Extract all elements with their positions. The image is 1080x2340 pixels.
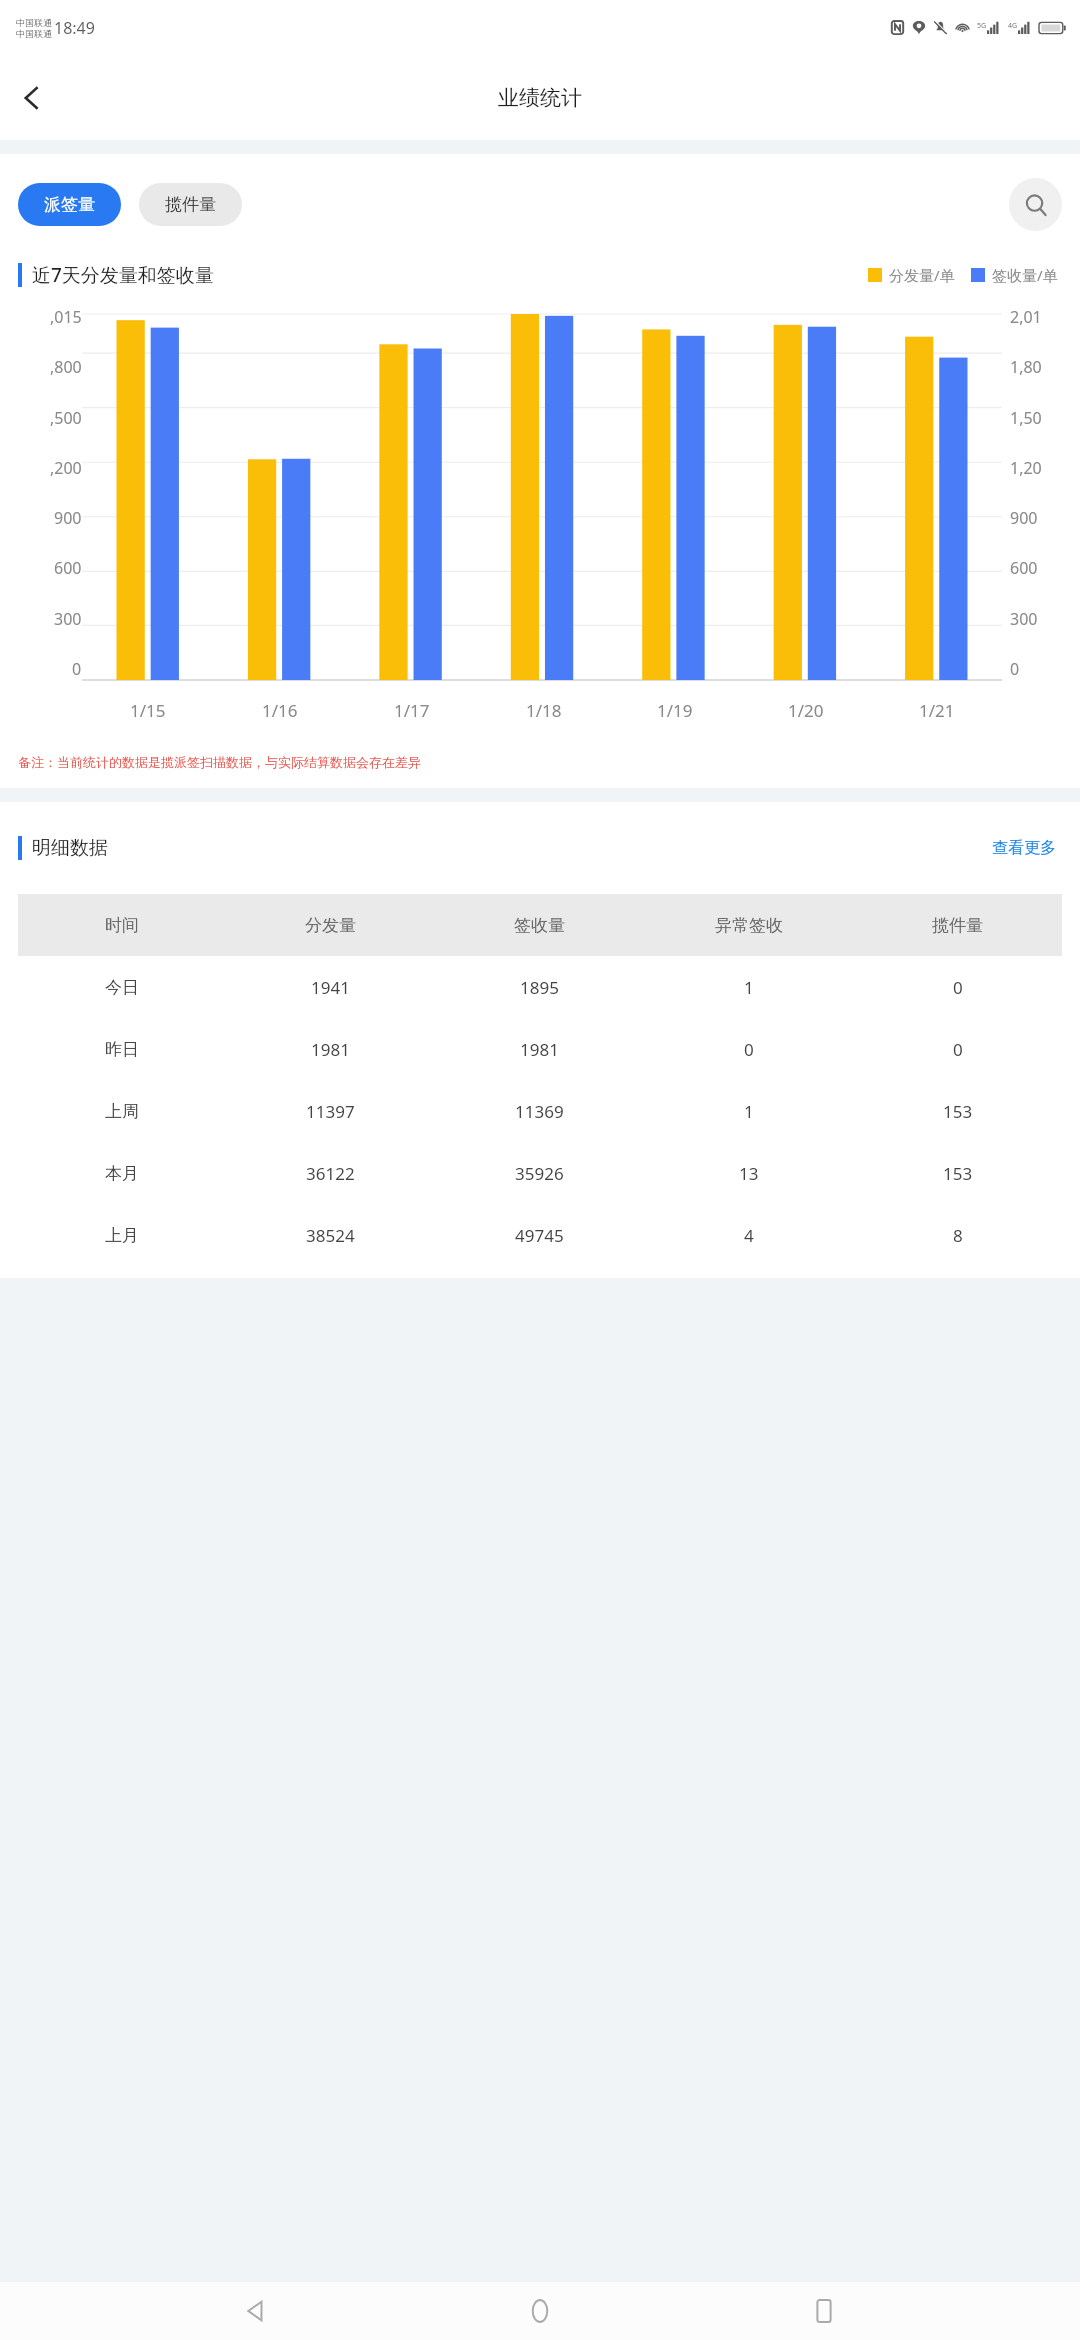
staticText: 业绩统计 — [498, 85, 582, 111]
staticText: 上月 — [105, 1225, 139, 1246]
staticText: 153 — [943, 1100, 973, 1123]
staticText: 300 — [54, 608, 82, 630]
staticText: 49745 — [515, 1224, 564, 1247]
button[interactable]: 上周 — [18, 1080, 1062, 1142]
staticText: 8 — [953, 1224, 963, 1247]
staticText: 0 — [744, 1038, 754, 1061]
staticText: 35926 — [515, 1162, 564, 1185]
staticText: 11369 — [515, 1100, 564, 1123]
staticText: 1981 — [311, 1038, 350, 1061]
staticText: 分发量/单 — [889, 265, 955, 285]
staticText: 1981 — [520, 1038, 559, 1061]
staticText: 明细数据 — [32, 836, 108, 860]
staticText: 1/18 — [526, 699, 562, 722]
staticText: 异常签收 — [715, 915, 783, 936]
staticText: 153 — [943, 1162, 973, 1185]
staticText: 中国联通 — [16, 28, 52, 39]
staticText: 揽件量 — [932, 915, 983, 936]
staticText: 36122 — [306, 1162, 355, 1185]
staticText: 2,01 — [1010, 306, 1042, 328]
button[interactable]: 本月 — [18, 1142, 1062, 1204]
staticText: 1,20 — [1010, 457, 1042, 479]
button[interactable]: 今日 — [18, 956, 1062, 1018]
staticText: 1941 — [311, 976, 350, 999]
staticText: 11397 — [306, 1100, 355, 1123]
staticText: 1/15 — [130, 699, 166, 722]
staticText: 600 — [54, 557, 82, 579]
staticText: 13 — [739, 1162, 759, 1185]
staticText: 昨日 — [105, 1039, 139, 1060]
button[interactable]: Home — [512, 2283, 568, 2339]
button[interactable]: Search — [1009, 178, 1062, 231]
button[interactable]: 揽件量 — [139, 183, 242, 226]
button[interactable]: Recent apps — [796, 2283, 852, 2339]
button[interactable]: 昨日 — [18, 1018, 1062, 1080]
staticText: 38524 — [306, 1224, 355, 1247]
staticText: 0 — [72, 658, 82, 680]
button[interactable]: 上月 — [18, 1204, 1062, 1266]
staticText: 900 — [1010, 507, 1038, 529]
staticText: 1895 — [520, 976, 559, 999]
staticText: 分发量 — [305, 915, 356, 936]
staticText: 揽件量 — [165, 194, 216, 215]
button[interactable]: 查看更多 — [986, 832, 1062, 864]
button[interactable]: Back — [0, 66, 64, 130]
staticText: 0 — [953, 976, 963, 999]
staticText: 1,50 — [1010, 407, 1042, 429]
staticText: 1/20 — [788, 699, 824, 722]
staticText: 中国联通 — [16, 17, 52, 28]
staticText: ,015 — [50, 306, 82, 328]
button[interactable]: Back — [228, 2283, 284, 2339]
staticText: ,200 — [50, 457, 82, 479]
staticText: 1/19 — [657, 699, 693, 722]
staticText: 签收量 — [514, 915, 565, 936]
staticText: 4 — [744, 1224, 754, 1247]
button[interactable]: 派签量 — [18, 183, 121, 226]
staticText: 18:49 — [54, 17, 95, 39]
staticText: 备注：当前统计的数据是揽派签扫描数据，与实际结算数据会存在差异 — [18, 754, 421, 770]
staticText: 查看更多 — [992, 838, 1056, 858]
staticText: 近7天分发量和签收量 — [32, 262, 214, 288]
staticText: 1,80 — [1010, 356, 1042, 378]
staticText: 本月 — [105, 1163, 139, 1184]
staticText: ,800 — [50, 356, 82, 378]
staticText: 300 — [1010, 608, 1038, 630]
staticText: 0 — [953, 1038, 963, 1061]
staticText: 今日 — [105, 977, 139, 998]
staticText: 时间 — [105, 915, 139, 936]
staticText: 900 — [54, 507, 82, 529]
staticText: 1 — [744, 1100, 754, 1123]
staticText: 1/21 — [919, 699, 955, 722]
staticText: 派签量 — [44, 194, 95, 215]
staticText: 上周 — [105, 1101, 139, 1122]
staticText: 1 — [744, 976, 754, 999]
staticText: 签收量/单 — [992, 265, 1058, 285]
staticText: 1/16 — [262, 699, 298, 722]
staticText: 0 — [1010, 658, 1020, 680]
staticText: 600 — [1010, 557, 1038, 579]
staticText: ,500 — [50, 407, 82, 429]
staticText: 1/17 — [394, 699, 430, 722]
staticText: 4G — [1008, 21, 1018, 31]
staticText: 5G — [977, 21, 987, 31]
